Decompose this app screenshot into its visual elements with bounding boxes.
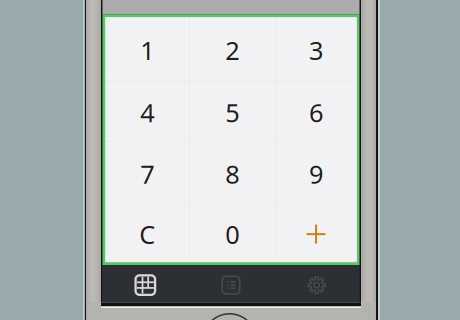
staticText: 2 [225, 33, 239, 67]
button[interactable]: History [188, 265, 274, 305]
button[interactable]: C [105, 204, 189, 262]
staticText: 0 [225, 217, 239, 251]
staticText: 5 [225, 96, 239, 129]
button[interactable]: 6 [275, 80, 357, 141]
button[interactable]: Settings [274, 265, 359, 305]
staticText: 6 [309, 96, 323, 129]
button[interactable]: 8 [190, 142, 275, 203]
button[interactable]: 1 [105, 17, 189, 80]
button[interactable]: Keypad [102, 265, 188, 305]
button[interactable]: 4 [105, 80, 189, 141]
staticText: 8 [225, 157, 239, 191]
button[interactable]: 5 [190, 80, 275, 141]
staticText: 9 [309, 157, 323, 191]
button[interactable] [275, 204, 357, 262]
button[interactable]: 3 [275, 17, 357, 80]
button[interactable]: 7 [105, 142, 189, 203]
staticText: 7 [140, 157, 154, 191]
button[interactable]: 0 [190, 204, 275, 262]
button[interactable]: 9 [275, 142, 357, 203]
button[interactable]: 2 [190, 17, 275, 80]
staticText: C [139, 217, 155, 251]
staticText: 4 [140, 96, 154, 129]
staticText: 3 [309, 33, 323, 67]
staticText: 1 [140, 33, 154, 67]
